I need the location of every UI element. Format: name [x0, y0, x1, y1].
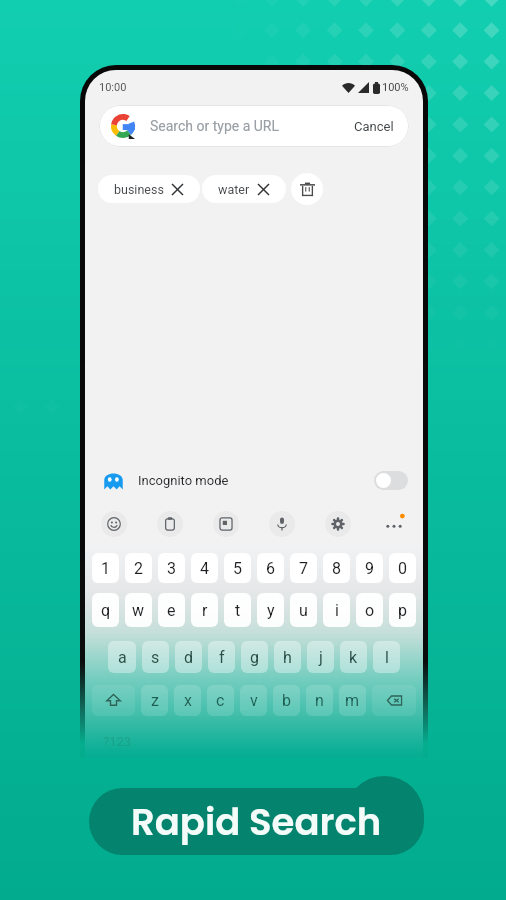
- button[interactable]: Translate: [213, 511, 239, 537]
- button[interactable]: Incognito mode: [85, 459, 423, 501]
- button[interactable]: o: [356, 593, 383, 627]
- staticText: o: [365, 601, 375, 620]
- button[interactable]: Shift: [92, 685, 135, 716]
- staticText: k: [349, 648, 358, 667]
- button[interactable]: m: [339, 685, 366, 716]
- button[interactable]: 5: [224, 553, 251, 583]
- button[interactable]: e: [158, 593, 185, 627]
- button[interactable]: 6: [257, 553, 284, 583]
- staticText: t: [235, 601, 241, 620]
- staticText: a: [118, 648, 127, 667]
- button[interactable]: n: [306, 685, 333, 716]
- staticText: ?123: [103, 734, 132, 749]
- staticText: c: [216, 691, 225, 710]
- staticText: p: [398, 601, 407, 620]
- button[interactable]: q: [92, 593, 119, 627]
- staticText: b: [282, 691, 291, 710]
- button[interactable]: 1: [92, 553, 119, 583]
- staticText: 1: [101, 559, 110, 578]
- staticText: h: [283, 648, 292, 667]
- button[interactable]: p: [389, 593, 416, 627]
- staticText: g: [250, 648, 259, 667]
- staticText: w: [132, 601, 145, 620]
- staticText: l: [385, 648, 389, 667]
- button[interactable]: f: [208, 641, 235, 673]
- button[interactable]: i: [323, 593, 350, 627]
- button[interactable]: Emoji: [101, 511, 127, 537]
- button[interactable]: j: [307, 641, 334, 673]
- button[interactable]: z: [141, 685, 168, 716]
- button[interactable]: y: [257, 593, 284, 627]
- staticText: s: [151, 648, 160, 667]
- button[interactable]: s: [142, 641, 169, 673]
- button[interactable]: Rapid Search: [89, 776, 424, 855]
- staticText: v: [250, 691, 258, 710]
- button[interactable]: Clipboard: [157, 511, 183, 537]
- button[interactable]: v: [240, 685, 267, 716]
- button[interactable]: 7: [290, 553, 317, 583]
- button[interactable]: r: [191, 593, 218, 627]
- staticText: f: [219, 648, 225, 667]
- staticText: j: [319, 648, 323, 667]
- staticText: water: [218, 182, 250, 197]
- staticText: 10:00: [99, 81, 127, 94]
- staticText: 4: [200, 559, 209, 578]
- staticText: 7: [299, 559, 308, 578]
- button[interactable]: x: [174, 685, 201, 716]
- button[interactable]: c: [207, 685, 234, 716]
- button[interactable]: Settings: [325, 511, 351, 537]
- button[interactable]: 3: [158, 553, 185, 583]
- staticText: 9: [365, 559, 374, 578]
- button[interactable]: k: [340, 641, 367, 673]
- button[interactable]: 2: [125, 553, 152, 583]
- button[interactable]: Voice input: [269, 511, 295, 537]
- button[interactable]: g: [241, 641, 268, 673]
- staticText: 2: [134, 559, 143, 578]
- staticText: Search or type a URL: [150, 118, 279, 134]
- button[interactable]: Search or type a URL: [99, 105, 409, 147]
- staticText: 6: [266, 559, 275, 578]
- staticText: business: [114, 182, 164, 197]
- staticText: 3: [167, 559, 176, 578]
- staticText: z: [151, 691, 159, 710]
- staticText: x: [184, 691, 192, 710]
- button[interactable]: 9: [356, 553, 383, 583]
- staticText: Incognito mode: [138, 473, 229, 488]
- button[interactable]: d: [175, 641, 202, 673]
- button[interactable]: 0: [389, 553, 416, 583]
- staticText: m: [345, 691, 360, 710]
- staticText: q: [101, 601, 111, 620]
- staticText: i: [335, 601, 339, 620]
- staticText: u: [299, 601, 308, 620]
- staticText: Cancel: [354, 119, 394, 134]
- staticText: 8: [332, 559, 341, 578]
- staticText: e: [167, 601, 176, 620]
- button[interactable]: u: [290, 593, 317, 627]
- button[interactable]: Clear search history: [291, 173, 323, 205]
- button[interactable]: 8: [323, 553, 350, 583]
- button[interactable]: More options: [381, 511, 407, 537]
- staticText: r: [202, 601, 208, 620]
- staticText: 100%: [382, 81, 409, 94]
- staticText: n: [315, 691, 324, 710]
- button[interactable]: Backspace: [372, 685, 416, 716]
- button[interactable]: 4: [191, 553, 218, 583]
- staticText: Rapid Search: [131, 796, 382, 848]
- button[interactable]: a: [108, 641, 136, 673]
- button[interactable]: t: [224, 593, 251, 627]
- button[interactable]: b: [273, 685, 300, 716]
- button[interactable]: w: [125, 593, 152, 627]
- button[interactable]: business: [98, 175, 200, 203]
- button[interactable]: l: [373, 641, 400, 673]
- staticText: d: [184, 648, 194, 667]
- staticText: 0: [398, 559, 407, 578]
- button[interactable]: water: [202, 175, 286, 203]
- staticText: y: [267, 601, 275, 620]
- staticText: 5: [233, 559, 242, 578]
- button[interactable]: h: [274, 641, 301, 673]
